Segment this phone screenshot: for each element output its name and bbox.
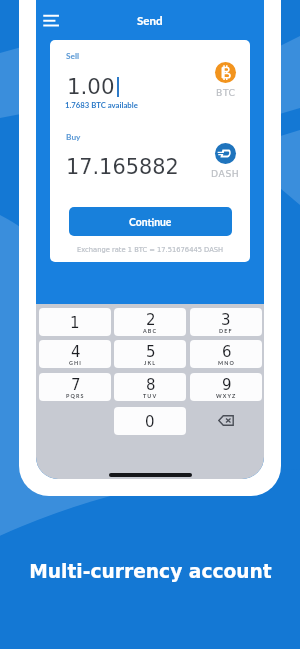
staticText: MNO [218,360,235,366]
button[interactable]: 6 [190,340,262,368]
staticText: TUV [143,393,158,399]
button[interactable]: Menu [39,9,65,33]
staticText: Continue [129,216,172,228]
staticText: DEF [219,328,233,334]
staticText: ABC [143,328,158,334]
staticText: PQRS [66,393,85,399]
button[interactable]: Continue [69,207,232,236]
staticText: 5 [146,343,156,360]
staticText: Exchange rate 1 BTC = 17.51676445 DASH [77,246,224,254]
staticText: 0 [145,413,155,430]
button[interactable]: 5 [114,340,186,368]
staticText: DASH [211,168,240,179]
staticText: Send [137,14,163,28]
button[interactable]: Backspace [190,407,262,433]
staticText: 8 [146,376,156,393]
staticText: 4 [71,343,81,360]
staticText: 1.7683 BTC available [65,100,138,109]
button[interactable]: 4 [39,340,111,368]
button[interactable]: 8 [114,373,186,401]
staticText: WXYZ [216,393,237,399]
staticText: 3 [221,311,231,328]
staticText: Multi-currency account [29,561,272,583]
staticText: 6 [222,343,232,360]
staticText: 17.165882 [66,155,179,179]
button[interactable]: 1 [39,308,111,336]
staticText: 1 [70,314,80,331]
staticText: Buy [66,132,81,142]
staticText: 7 [71,376,81,393]
button[interactable]: 0 [114,407,186,435]
button[interactable]: 7 [39,373,111,401]
staticText: 2 [146,311,156,328]
staticText: GHI [69,360,82,366]
staticText: 9 [222,376,232,393]
button[interactable]: 2 [114,308,186,336]
button[interactable]: 3 [190,308,262,336]
staticText: BTC [216,87,236,98]
staticText: JKL [144,360,157,366]
button[interactable]: 9 [190,373,262,401]
staticText: Sell [66,51,80,61]
staticText: 1.00 [67,74,115,99]
